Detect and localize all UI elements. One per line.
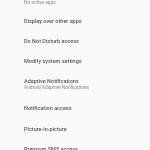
staticText: Premium SMS access bbox=[24, 146, 78, 150]
staticText: Modify system settings bbox=[24, 58, 82, 64]
button[interactable]: Adaptive Notifications bbox=[0, 78, 150, 90]
staticText: Do Not Disturb access bbox=[24, 38, 79, 44]
staticText: Picture-in-picture bbox=[24, 126, 67, 132]
staticText: Android Adaptive Notifications bbox=[24, 85, 90, 91]
button[interactable]: Premium SMS access bbox=[0, 146, 150, 150]
button[interactable]: Display over other apps bbox=[0, 18, 150, 24]
button[interactable]: Do Not Disturb access bbox=[0, 38, 150, 44]
button[interactable]: Modify system settings bbox=[0, 58, 150, 64]
staticText: No active apps bbox=[24, 0, 150, 6]
staticText: Notification access bbox=[24, 105, 72, 111]
staticText: Display over other apps bbox=[24, 18, 82, 24]
button[interactable]: Picture-in-picture bbox=[0, 126, 150, 132]
button[interactable]: Notification access bbox=[0, 105, 150, 111]
staticText: Adaptive Notifications bbox=[24, 78, 79, 84]
